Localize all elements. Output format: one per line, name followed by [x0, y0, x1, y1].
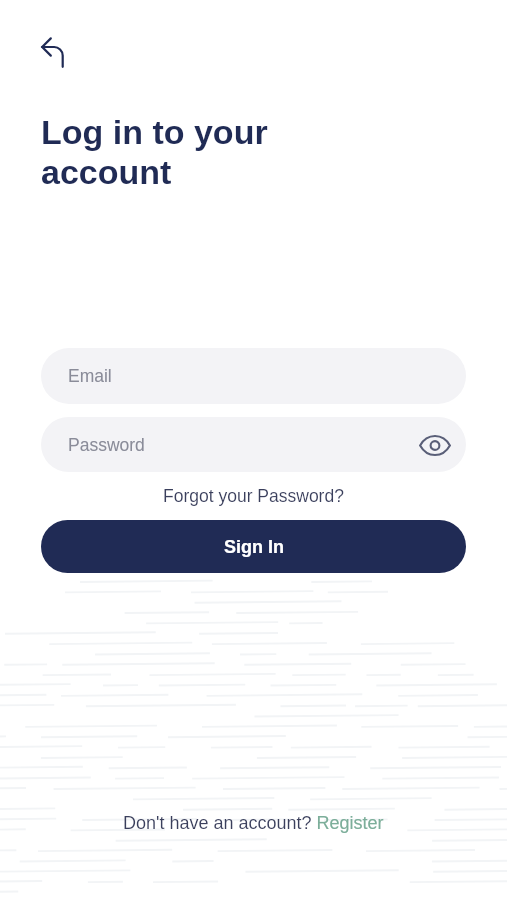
staticText: Sign In [224, 537, 284, 557]
button[interactable]: Sign In [41, 520, 466, 573]
staticText: Email [68, 366, 112, 386]
button[interactable]: Forgot your Password? [157, 484, 350, 508]
button[interactable]: Email [41, 348, 466, 404]
staticText: Log in to your account [41, 113, 268, 192]
button[interactable]: Back [30, 31, 74, 75]
staticText: Password [68, 435, 145, 455]
button[interactable]: Don't have an account? Register [117, 811, 390, 835]
button[interactable]: Show password [415, 425, 455, 465]
button[interactable]: Password [41, 417, 466, 472]
